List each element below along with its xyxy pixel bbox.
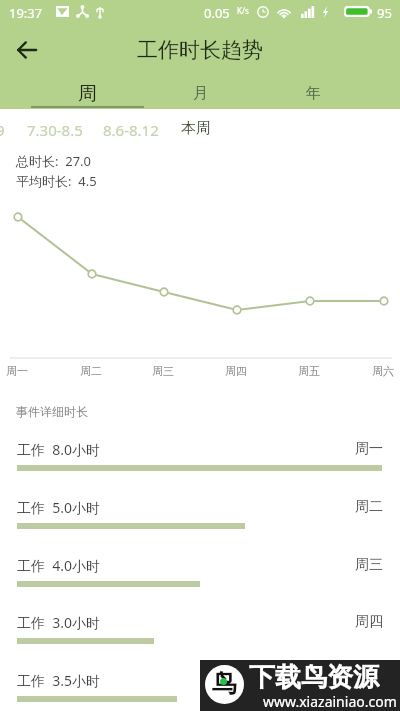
button[interactable]: 年 (257, 74, 370, 109)
staticText: 周 (78, 82, 97, 106)
staticText: 周三 (355, 556, 383, 574)
button[interactable]: Back (9, 32, 45, 68)
staticText: 工作 3.5小时 (17, 671, 101, 690)
button[interactable]: 工作 3.0小时 (0, 607, 400, 659)
staticText: 周一 (355, 440, 383, 458)
staticText: 月 (193, 84, 208, 103)
button[interactable]: 工作 4.0小时 (0, 550, 400, 602)
button[interactable]: 工作 5.0小时 (0, 492, 400, 544)
staticText: 周五 (298, 364, 320, 378)
staticText: 工作 5.0小时 (17, 498, 101, 517)
staticText: 下载鸟资源 (249, 661, 379, 694)
staticText: 周五 (355, 671, 383, 689)
staticText: 19:37 (9, 4, 43, 22)
staticText: 0.05 (204, 4, 230, 22)
staticText: 总时长: 27.0 (16, 152, 92, 170)
staticText: 周六 (372, 364, 394, 378)
staticText: 工作 3.0小时 (17, 613, 101, 632)
staticText: 周二 (80, 364, 102, 378)
button[interactable]: 本周 (181, 119, 211, 138)
staticText: 周二 (355, 498, 383, 516)
staticText: 事件详细时长 (16, 404, 88, 419)
staticText: 周三 (152, 364, 174, 378)
button[interactable]: 周 (31, 74, 144, 109)
staticText: 工作 4.0小时 (17, 556, 101, 575)
staticText: K/s (237, 5, 249, 16)
staticText: 95 (377, 4, 392, 22)
staticText: 工作时长趋势 (137, 37, 263, 63)
staticText: www.xiazainiao.com (263, 692, 397, 711)
staticText: 周一 (6, 364, 28, 378)
staticText: 周四 (225, 364, 247, 378)
staticText: 平均时长: 4.5 (16, 172, 97, 190)
button[interactable]: 工作 8.0小时 (0, 434, 400, 486)
staticText: 工作 8.0小时 (17, 440, 101, 459)
button[interactable]: 工作 3.5小时 (0, 665, 400, 711)
button[interactable]: 月 (144, 74, 257, 109)
staticText: 年 (306, 84, 321, 103)
button[interactable]: 8.6-8.12 (103, 120, 159, 140)
staticText: 9 (0, 120, 5, 140)
staticText: 周四 (355, 613, 383, 631)
staticText: 鸟 (212, 668, 237, 699)
button[interactable]: 7.30-8.5 (27, 120, 83, 140)
